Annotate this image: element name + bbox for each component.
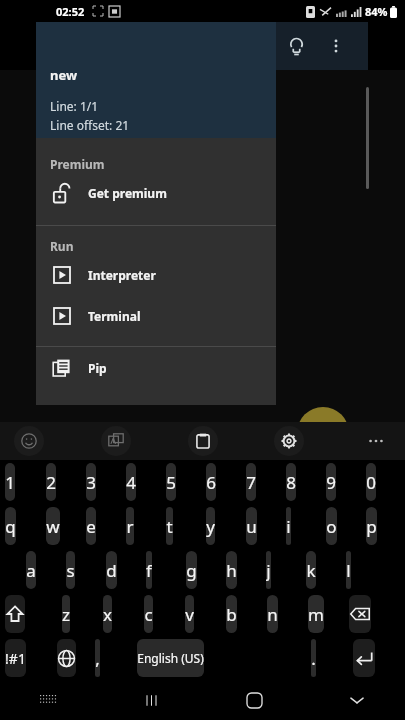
button[interactable]: r <box>126 507 134 545</box>
staticText: l <box>346 559 351 582</box>
staticText: Line: 1/1 <box>50 98 99 114</box>
staticText: j <box>266 559 271 582</box>
staticText: 1 <box>5 471 15 494</box>
button[interactable]: x <box>103 595 112 633</box>
button[interactable]: English (US) <box>137 639 204 677</box>
staticText: i <box>286 515 291 538</box>
button[interactable]: 7 <box>246 463 256 501</box>
button[interactable]: Back <box>339 682 375 718</box>
button[interactable]: i <box>286 507 291 545</box>
staticText: q <box>5 515 16 538</box>
staticText: s <box>66 559 75 582</box>
button[interactable]: h <box>226 551 237 589</box>
button[interactable] <box>349 595 371 633</box>
button[interactable]: Translate <box>101 426 131 456</box>
staticText: English (US) <box>137 650 204 666</box>
staticText: r <box>126 515 134 538</box>
button[interactable]: 6 <box>206 463 216 501</box>
button[interactable]: 4 <box>126 463 136 501</box>
staticText: g <box>186 559 197 582</box>
button[interactable]: Run <box>297 407 349 459</box>
staticText: . <box>311 647 316 670</box>
staticText: Run <box>50 238 74 254</box>
button[interactable]: b <box>226 595 237 633</box>
button[interactable]: 5 <box>166 463 176 501</box>
button[interactable]: Recents <box>133 682 169 718</box>
staticText: 0 <box>366 471 376 494</box>
button[interactable]: j <box>266 551 271 589</box>
button[interactable]: s <box>66 551 75 589</box>
button[interactable]: Pip <box>36 347 276 388</box>
button[interactable]: . <box>311 639 316 677</box>
staticText: v <box>185 603 194 626</box>
button[interactable]: Emoji <box>14 426 44 456</box>
button[interactable]: e <box>86 507 96 545</box>
staticText: o <box>326 515 337 538</box>
staticText: 3 <box>86 471 96 494</box>
button[interactable]: k <box>306 551 316 589</box>
button[interactable]: l <box>346 551 351 589</box>
staticText: f <box>146 559 152 582</box>
staticText: Pip <box>88 360 107 376</box>
button[interactable]: 0 <box>366 463 376 501</box>
button[interactable]: !#1 <box>5 639 26 677</box>
staticText: !#1 <box>5 649 26 668</box>
button[interactable]: Get premium <box>36 172 276 213</box>
button[interactable]: 2 <box>46 463 56 501</box>
staticText: Get premium <box>88 185 167 201</box>
button[interactable] <box>5 595 25 633</box>
button[interactable]: u <box>246 507 257 545</box>
button[interactable]: Home <box>236 682 272 718</box>
staticText: Interpreter <box>88 267 156 283</box>
button[interactable]: Keyboard settings <box>274 426 304 456</box>
button[interactable]: 8 <box>286 463 296 501</box>
button[interactable]: c <box>144 595 153 633</box>
button[interactable]: f <box>146 551 152 589</box>
staticText: 5 <box>166 471 176 494</box>
button[interactable] <box>57 639 76 677</box>
button[interactable]: g <box>186 551 197 589</box>
staticText: p <box>366 515 377 538</box>
button[interactable]: Hide keyboard <box>30 682 66 718</box>
button[interactable]: t <box>166 507 173 545</box>
staticText: 02:52 <box>56 4 85 19</box>
button[interactable]: 3 <box>86 463 96 501</box>
staticText: Premium <box>50 156 105 172</box>
button[interactable]: z <box>62 595 70 633</box>
button[interactable]: p <box>366 507 377 545</box>
button[interactable] <box>353 639 375 677</box>
button[interactable]: a <box>26 551 36 589</box>
staticText: 4 <box>126 471 136 494</box>
staticText: z <box>62 603 70 626</box>
button[interactable]: w <box>46 507 60 545</box>
staticText: 84% <box>365 4 388 19</box>
button[interactable]: m <box>308 595 324 633</box>
button[interactable]: q <box>5 507 16 545</box>
staticText: a <box>26 559 36 582</box>
button[interactable]: 9 <box>326 463 336 501</box>
button[interactable]: n <box>267 595 278 633</box>
button[interactable]: Terminal <box>36 295 276 336</box>
staticText: d <box>106 559 117 582</box>
staticText: Line offset: 21 <box>50 117 130 133</box>
staticText: new <box>50 66 78 84</box>
staticText: u <box>246 515 257 538</box>
button[interactable]: v <box>185 595 194 633</box>
button[interactable]: More <box>361 426 391 456</box>
button[interactable]: o <box>326 507 337 545</box>
staticText: w <box>46 515 60 538</box>
staticText: h <box>226 559 237 582</box>
staticText: y <box>206 515 215 538</box>
button[interactable]: Clipboard <box>188 426 218 456</box>
staticText: n <box>267 603 278 626</box>
button[interactable]: , <box>95 639 100 677</box>
button[interactable]: d <box>106 551 117 589</box>
button[interactable]: Hint <box>276 26 316 66</box>
button[interactable]: y <box>206 507 215 545</box>
button[interactable]: Interpreter <box>36 254 276 295</box>
staticText: c <box>144 603 153 626</box>
button[interactable]: More options <box>316 26 356 66</box>
staticText: x <box>103 603 112 626</box>
button[interactable]: 1 <box>5 463 15 501</box>
